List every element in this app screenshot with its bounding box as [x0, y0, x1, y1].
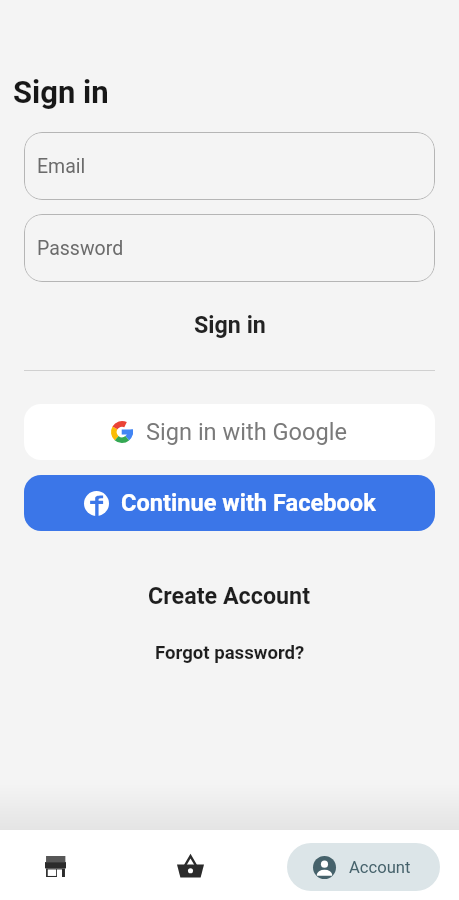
- button[interactable]: Sign in: [0, 299, 459, 349]
- staticText: Password: [37, 237, 124, 260]
- button[interactable]: Basket: [157, 831, 223, 900]
- staticText: Email: [37, 155, 86, 178]
- button[interactable]: Shop: [22, 831, 88, 900]
- staticText: Sign in: [194, 311, 266, 338]
- button[interactable]: Sign in with Google: [24, 404, 435, 460]
- button[interactable]: Password: [24, 214, 435, 282]
- staticText: Sign in with Google: [146, 418, 348, 446]
- staticText: Sign in: [13, 74, 109, 110]
- button[interactable]: Forgot password?: [0, 639, 459, 667]
- button[interactable]: Email: [24, 132, 435, 200]
- staticText: Account: [349, 858, 411, 877]
- staticText: Continue with Facebook: [121, 489, 376, 517]
- button[interactable]: Create Account: [0, 577, 459, 613]
- staticText: Create Account: [148, 582, 311, 609]
- staticText: Forgot password?: [155, 642, 305, 664]
- button[interactable]: Account: [287, 843, 440, 891]
- button[interactable]: Continue with Facebook: [24, 475, 435, 531]
